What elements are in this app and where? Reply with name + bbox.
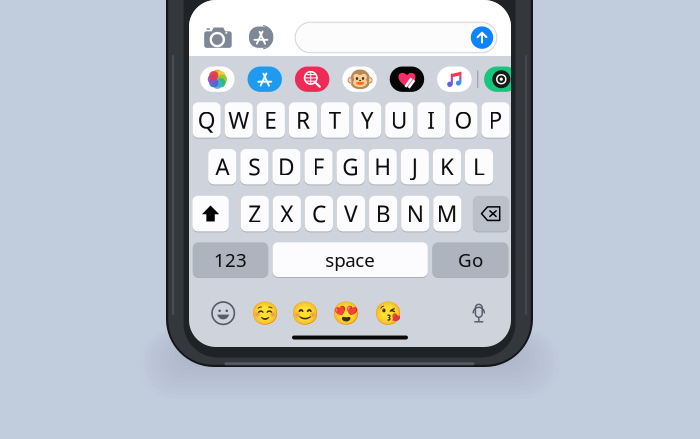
staticText: 🐵	[345, 66, 373, 92]
button[interactable]: C	[305, 196, 333, 232]
button[interactable]: Emoji	[252, 300, 278, 326]
button[interactable]: Z	[241, 196, 269, 232]
staticText: Y	[361, 105, 374, 135]
staticText: U	[391, 105, 408, 135]
button[interactable]: P	[481, 102, 510, 139]
staticText: B	[376, 198, 391, 229]
staticText: S	[248, 152, 260, 182]
staticText: Go	[458, 247, 483, 272]
button[interactable]: D	[272, 149, 300, 185]
button[interactable]: E	[257, 102, 285, 139]
button[interactable]: O	[449, 102, 477, 139]
button[interactable]: iMessage apps	[249, 26, 277, 50]
button[interactable]: Shift	[192, 196, 229, 232]
staticText: O	[454, 105, 472, 135]
staticText: K	[440, 152, 454, 182]
button[interactable]: App	[342, 66, 377, 92]
button[interactable]: Emoji keyboard	[211, 301, 235, 325]
staticText: V	[344, 198, 358, 229]
staticText: G	[342, 152, 359, 182]
button[interactable]: Camera	[204, 27, 232, 49]
staticText: P	[489, 105, 503, 135]
staticText: 😍	[332, 300, 360, 326]
button[interactable]: 123	[193, 242, 268, 278]
button[interactable]: S	[240, 149, 268, 185]
button[interactable]: Emoji	[333, 300, 359, 326]
staticText: I	[427, 105, 435, 135]
button[interactable]: J	[401, 149, 429, 185]
staticText: Z	[248, 198, 261, 229]
button[interactable]: Emoji	[292, 300, 318, 326]
staticText: N	[407, 198, 424, 229]
button[interactable]: Go	[432, 242, 508, 278]
staticText: T	[329, 105, 342, 135]
button[interactable]: T	[321, 102, 349, 139]
staticText: D	[278, 152, 295, 182]
button[interactable]: W	[225, 102, 253, 139]
button[interactable]: H	[369, 149, 397, 185]
staticText: F	[313, 152, 325, 182]
button[interactable]: App	[247, 66, 282, 92]
staticText: 123	[214, 247, 247, 272]
staticText: Q	[198, 105, 216, 135]
button[interactable]: Delete	[473, 196, 509, 232]
staticText: R	[296, 105, 310, 135]
button[interactable]: Dictate	[471, 304, 486, 324]
button[interactable]: F	[304, 149, 333, 185]
button[interactable]: App	[200, 66, 235, 92]
staticText: H	[374, 152, 391, 182]
button[interactable]: App	[437, 66, 472, 92]
button[interactable]: More apps	[484, 66, 519, 92]
button[interactable]: Y	[353, 102, 381, 139]
button[interactable]: space	[273, 242, 428, 278]
button[interactable]: R	[289, 102, 317, 139]
staticText: L	[473, 152, 485, 182]
staticText: A	[215, 152, 229, 182]
staticText: space	[325, 247, 375, 272]
button[interactable]: K	[433, 149, 461, 185]
button[interactable]: A	[208, 149, 236, 185]
staticText: W	[228, 105, 249, 135]
staticText: 😘	[374, 300, 402, 326]
button[interactable]: U	[385, 102, 413, 139]
staticText: M	[437, 198, 458, 229]
staticText: E	[264, 105, 277, 135]
button[interactable]: I	[417, 102, 445, 139]
button[interactable]: M	[433, 196, 461, 232]
staticText: J	[412, 152, 418, 182]
button[interactable]: G	[337, 149, 365, 185]
button[interactable]: Send	[469, 25, 494, 50]
staticText: 😊	[291, 300, 319, 326]
staticText: C	[312, 198, 326, 229]
staticText: ☺️	[251, 300, 279, 326]
button[interactable]: Q	[193, 102, 221, 139]
button[interactable]: App	[390, 66, 424, 92]
button[interactable]: N	[401, 196, 429, 232]
button[interactable]: L	[465, 149, 493, 185]
button[interactable]: X	[273, 196, 301, 232]
staticText: X	[280, 198, 293, 229]
button[interactable]: Emoji	[375, 300, 401, 326]
button[interactable]: B	[369, 196, 397, 232]
button[interactable]: V	[337, 196, 365, 232]
button[interactable]: App	[295, 66, 329, 92]
